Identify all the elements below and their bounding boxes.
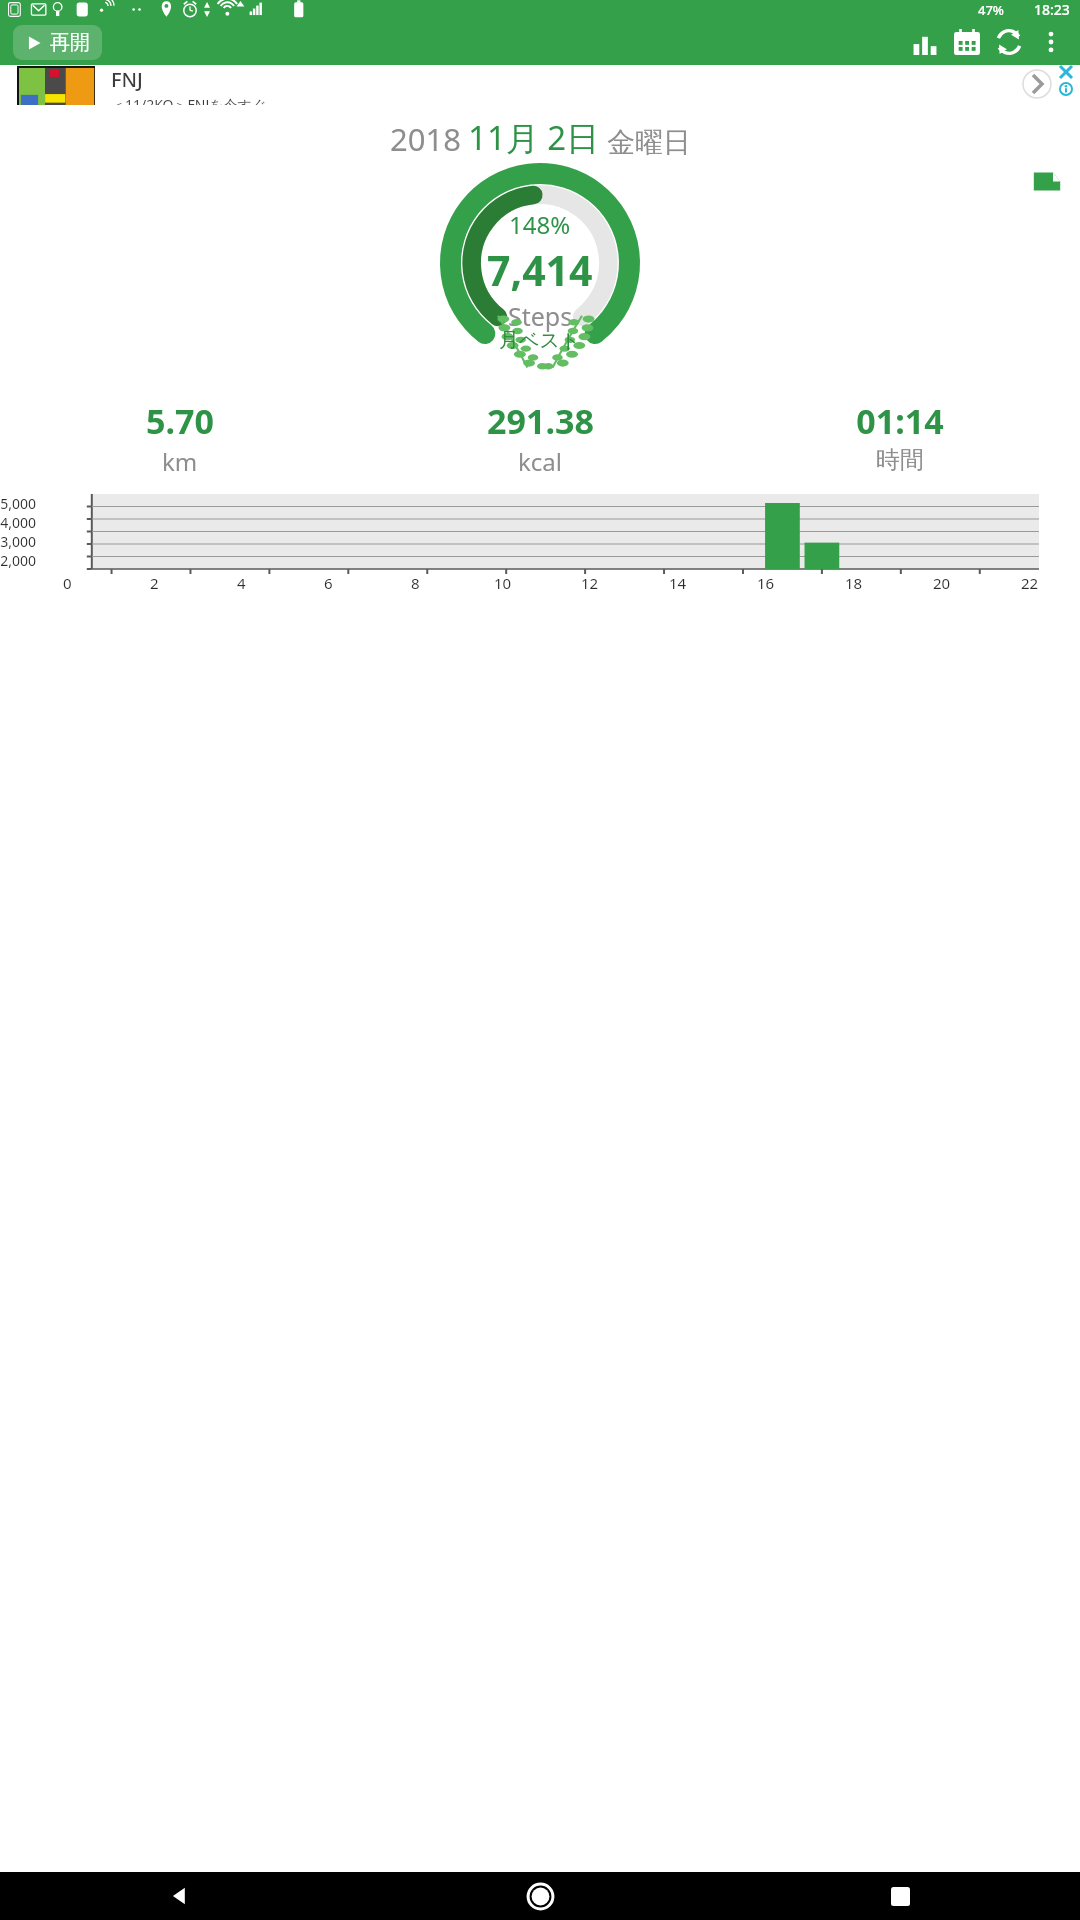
staticText: 5.70 xyxy=(146,398,214,444)
button[interactable]: 再開 xyxy=(13,25,102,60)
staticText: 0 xyxy=(63,573,72,593)
staticText: 16 xyxy=(757,573,775,593)
button[interactable]: 5.70 xyxy=(0,396,360,480)
staticText: 2 xyxy=(150,573,159,593)
staticText: 22 xyxy=(1021,573,1039,593)
button[interactable]: Calendar xyxy=(946,21,988,63)
staticText: 金曜日 xyxy=(607,125,691,160)
staticText: 20 xyxy=(933,573,951,593)
staticText: 時間 xyxy=(876,445,924,475)
staticText: 01:14 xyxy=(856,398,944,444)
button[interactable]: FNJ xyxy=(0,65,1080,105)
staticText: 7,414 xyxy=(487,242,593,298)
staticText: 6 xyxy=(324,573,333,593)
staticText: 18:23 xyxy=(1034,0,1070,19)
staticText: FNJ xyxy=(111,66,143,93)
staticText: kcal xyxy=(518,445,562,478)
staticText: Steps xyxy=(508,299,573,333)
button[interactable]: Open ad xyxy=(1022,69,1052,99)
staticText: 10 xyxy=(494,573,512,593)
staticText: km xyxy=(162,445,198,478)
staticText: 148% xyxy=(509,208,571,241)
button[interactable]: Home xyxy=(360,1872,720,1920)
button[interactable]: 291.38 xyxy=(360,396,720,480)
staticText: 14 xyxy=(669,573,687,593)
staticText: 18 xyxy=(845,573,863,593)
staticText: 47% xyxy=(978,1,1004,19)
button[interactable]: Memo xyxy=(1032,166,1062,196)
staticText: 4,000 xyxy=(0,513,36,532)
staticText: 3,000 xyxy=(0,532,36,551)
button[interactable]: Back xyxy=(0,1872,360,1920)
staticText: 291.38 xyxy=(487,398,594,444)
staticText: ＜11/2KO＞FNJを今すぐ xyxy=(111,95,267,105)
button[interactable]: Step progress xyxy=(440,163,640,363)
button[interactable]: Hourly steps chart xyxy=(0,492,1080,593)
staticText: 2,000 xyxy=(0,551,36,569)
staticText: 2018 xyxy=(390,118,461,160)
staticText: 8 xyxy=(411,573,420,593)
button[interactable]: Ranking xyxy=(904,21,946,63)
staticText: 5,000 xyxy=(0,494,36,513)
staticText: 再開 xyxy=(50,30,90,55)
staticText: 12 xyxy=(581,573,599,593)
staticText: 月ベスト xyxy=(499,328,581,353)
button[interactable]: Repeat xyxy=(988,21,1030,63)
button[interactable]: Recent apps xyxy=(720,1872,1080,1920)
staticText: 4 xyxy=(237,573,246,593)
button[interactable]: More options xyxy=(1030,21,1072,63)
button[interactable]: Close ad xyxy=(1059,65,1073,79)
button[interactable]: 01:14 xyxy=(720,396,1080,477)
staticText: 11月 2日 xyxy=(468,115,600,160)
